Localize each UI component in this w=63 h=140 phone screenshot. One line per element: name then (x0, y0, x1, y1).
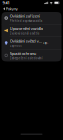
staticText: Zapnout (10, 44, 22, 48)
button[interactable]: Ovládání zařízení (1, 12, 61, 24)
staticText: Pokyny (6, 6, 18, 11)
button[interactable]: Spustit ochranu (1, 49, 61, 61)
button[interactable]: Pokyny (0, 6, 20, 12)
staticText: Zap. (42, 41, 48, 45)
staticText: 9:41 (3, 0, 10, 5)
button[interactable]: Ovládání světel vozidla (1, 37, 61, 49)
button[interactable]: Upozornění vozidla (1, 24, 61, 36)
staticText: Upozornění vozidla (10, 26, 43, 31)
staticText: Ovládání světel vozidla (10, 38, 42, 44)
staticText: Zabezpečení a sledování (10, 56, 43, 60)
staticText: Přehled a správa vozidla (10, 19, 42, 23)
staticText: Ovládání zařízení (10, 13, 40, 19)
staticText: Spustit ochranu (10, 51, 36, 56)
staticText: Zvukový signál a světla (10, 32, 39, 35)
